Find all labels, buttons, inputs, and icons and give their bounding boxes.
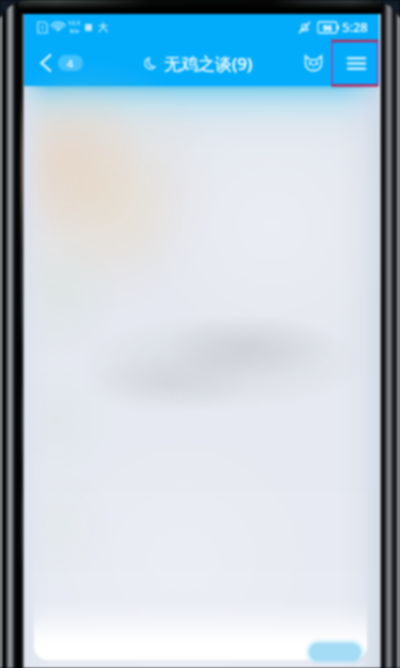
staticText: 4 [67, 56, 74, 71]
button[interactable]: Menu [334, 40, 379, 86]
staticText: 12.3 [68, 19, 80, 27]
staticText: 无鸡之谈(9) [164, 52, 253, 75]
button[interactable]: Group members [292, 40, 334, 86]
button[interactable]: Back [34, 40, 89, 86]
staticText: 5:28 [342, 18, 368, 36]
button[interactable]: Send [301, 634, 371, 664]
staticText: K/s [70, 27, 79, 35]
staticText: 96 [323, 22, 333, 33]
